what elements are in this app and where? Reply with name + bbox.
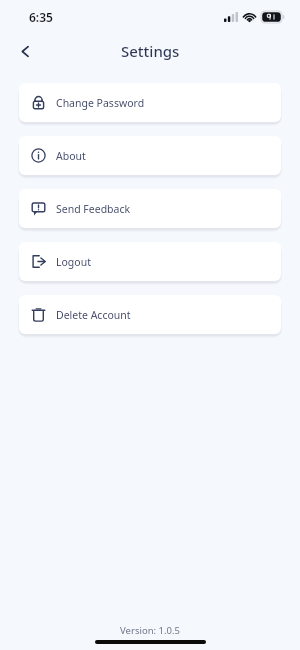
staticText: Send Feedback <box>56 202 131 216</box>
button[interactable]: Logout <box>19 242 281 281</box>
button[interactable]: Change Password <box>19 83 281 122</box>
staticText: Delete Account <box>56 308 131 322</box>
staticText: Logout <box>56 255 91 269</box>
staticText: Version: 1.0.5 <box>0 624 300 637</box>
staticText: 6:35 <box>29 9 53 25</box>
staticText: Settings <box>121 41 180 61</box>
staticText: About <box>56 149 86 163</box>
button[interactable]: Delete Account <box>19 295 281 334</box>
button[interactable]: About <box>19 136 281 175</box>
staticText: Change Password <box>56 96 145 110</box>
button[interactable]: Back <box>10 36 40 66</box>
button[interactable]: Send Feedback <box>19 189 281 228</box>
